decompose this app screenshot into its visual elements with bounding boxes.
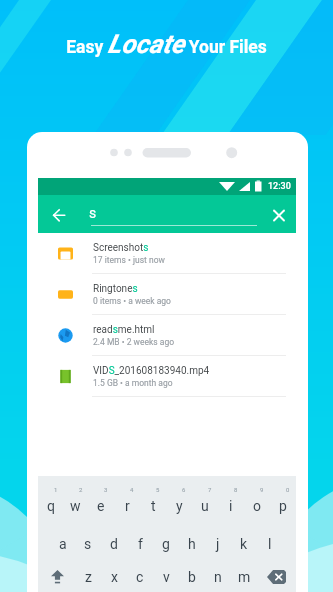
button[interactable]: 4 bbox=[114, 476, 140, 527]
staticText: r bbox=[125, 498, 130, 514]
button[interactable]: Ringtones bbox=[38, 274, 296, 315]
staticText: v bbox=[163, 569, 170, 585]
button[interactable]: 0 bbox=[270, 476, 296, 527]
staticText: 8 bbox=[234, 486, 238, 493]
staticText: g bbox=[162, 536, 170, 552]
staticText: 5 bbox=[156, 486, 160, 493]
button[interactable]: j bbox=[205, 527, 231, 561]
button[interactable]: readsme.html bbox=[38, 315, 296, 356]
staticText: 12:30 bbox=[268, 181, 291, 192]
button[interactable]: d bbox=[101, 527, 127, 561]
staticText: Easy Locate Your Files bbox=[0, 29, 333, 59]
staticText: z bbox=[85, 569, 92, 585]
staticText: i bbox=[229, 498, 233, 514]
staticText: 4 bbox=[130, 486, 134, 493]
staticText: VIDS_201608183940.mp4 bbox=[93, 365, 210, 377]
staticText: 2 bbox=[79, 486, 83, 493]
button[interactable]: v bbox=[153, 561, 179, 592]
button[interactable]: 9 bbox=[244, 476, 270, 527]
staticText: y bbox=[176, 498, 183, 514]
button[interactable]: l bbox=[257, 527, 283, 561]
button[interactable]: Backspace bbox=[257, 561, 296, 592]
staticText: readsme.html bbox=[93, 324, 155, 336]
button[interactable]: g bbox=[153, 527, 179, 561]
staticText: q bbox=[47, 498, 55, 514]
button[interactable]: Screenshots bbox=[38, 233, 296, 274]
button[interactable]: k bbox=[231, 527, 257, 561]
staticText: t bbox=[151, 498, 156, 514]
button[interactable]: f bbox=[127, 527, 153, 561]
staticText: 0 items • a week ago bbox=[93, 296, 171, 306]
button[interactable]: VIDS_201608183940.mp4 bbox=[38, 356, 296, 397]
button[interactable]: c bbox=[127, 561, 153, 592]
staticText: e bbox=[97, 498, 105, 514]
button[interactable]: 5 bbox=[140, 476, 166, 527]
button[interactable]: Back bbox=[47, 203, 71, 226]
staticText: n bbox=[214, 569, 222, 585]
staticText: a bbox=[59, 536, 67, 552]
staticText: 7 bbox=[208, 486, 212, 493]
staticText: 3 bbox=[104, 486, 108, 493]
staticText: b bbox=[188, 569, 196, 585]
staticText: w bbox=[70, 498, 81, 514]
button[interactable]: s bbox=[75, 527, 101, 561]
button[interactable]: a bbox=[50, 527, 75, 561]
button[interactable]: Clear search bbox=[269, 205, 289, 225]
staticText: h bbox=[188, 536, 196, 552]
staticText: s bbox=[89, 205, 97, 221]
staticText: j bbox=[216, 536, 220, 552]
button[interactable]: 6 bbox=[166, 476, 192, 527]
button[interactable]: 1 bbox=[38, 476, 63, 527]
staticText: 17 items • just now bbox=[93, 255, 165, 265]
staticText: o bbox=[253, 498, 261, 514]
staticText: Ringtones bbox=[93, 283, 138, 295]
button[interactable]: 3 bbox=[88, 476, 114, 527]
staticText: c bbox=[136, 569, 144, 585]
button[interactable]: 8 bbox=[218, 476, 244, 527]
staticText: 1.5 GB • a month ago bbox=[93, 378, 173, 388]
staticText: 1 bbox=[54, 486, 58, 493]
button[interactable]: x bbox=[101, 561, 127, 592]
button[interactable]: z bbox=[76, 561, 101, 592]
staticText: Screenshots bbox=[93, 242, 149, 254]
staticText: u bbox=[201, 498, 209, 514]
staticText: m bbox=[238, 569, 251, 585]
button[interactable]: 2 bbox=[63, 476, 88, 527]
button[interactable]: n bbox=[205, 561, 231, 592]
staticText: l bbox=[268, 536, 272, 552]
staticText: d bbox=[110, 536, 118, 552]
button[interactable]: Shift bbox=[38, 561, 76, 592]
staticText: 6 bbox=[182, 486, 186, 493]
button[interactable]: h bbox=[179, 527, 205, 561]
staticText: p bbox=[279, 498, 287, 514]
staticText: s bbox=[84, 536, 92, 552]
staticText: f bbox=[138, 536, 143, 552]
button[interactable]: 7 bbox=[192, 476, 218, 527]
staticText: 0 bbox=[286, 486, 290, 493]
staticText: x bbox=[111, 569, 118, 585]
staticText: 2.4 MB • 2 weeks ago bbox=[93, 337, 175, 347]
staticText: k bbox=[240, 536, 248, 552]
button[interactable]: b bbox=[179, 561, 205, 592]
button[interactable]: m bbox=[231, 561, 257, 592]
staticText: 9 bbox=[260, 486, 264, 493]
